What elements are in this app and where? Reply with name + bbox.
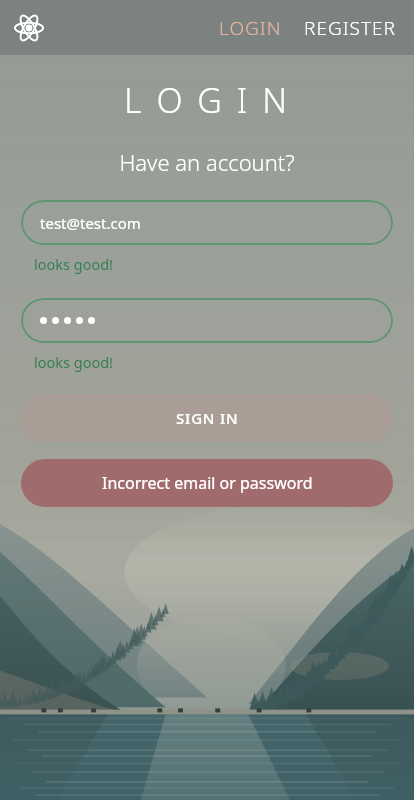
staticText: looks good! <box>34 352 114 372</box>
button[interactable]: test@test.com <box>21 200 393 245</box>
staticText: L O G I N <box>0 77 414 123</box>
staticText: SIGN IN <box>176 408 239 428</box>
button[interactable]: React home <box>10 9 48 47</box>
staticText: looks good! <box>34 254 114 274</box>
staticText: LOGIN <box>219 15 282 41</box>
button[interactable]: LOGIN <box>213 9 288 47</box>
button[interactable]: REGISTER <box>300 9 400 47</box>
staticText: Have an account? <box>0 147 414 177</box>
button[interactable]: Incorrect email or password <box>21 459 393 507</box>
staticText: REGISTER <box>304 15 396 41</box>
staticText: test@test.com <box>40 213 141 233</box>
staticText: Incorrect email or password <box>102 472 313 494</box>
button[interactable]: SIGN IN <box>21 394 393 442</box>
button[interactable] <box>21 298 393 343</box>
